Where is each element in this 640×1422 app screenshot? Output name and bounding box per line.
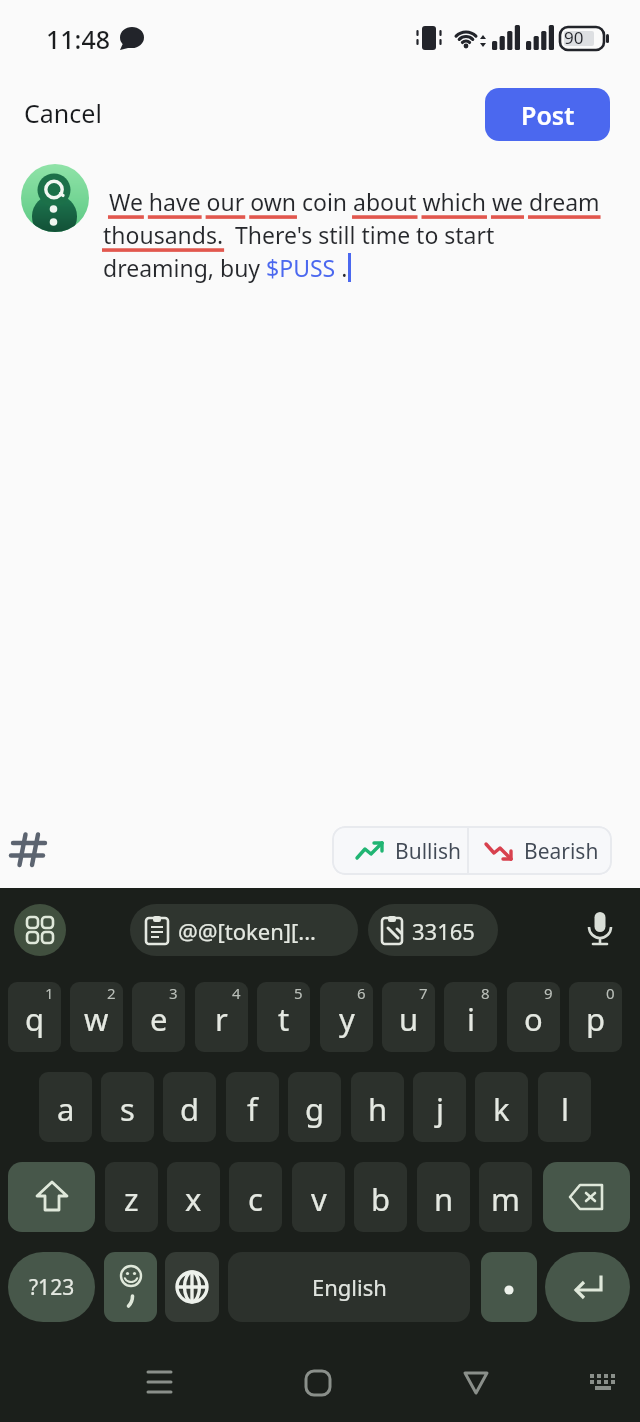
staticText: 4 — [232, 983, 241, 1003]
button[interactable]: v — [292, 1162, 345, 1232]
button[interactable]: u — [382, 982, 435, 1052]
button[interactable] — [588, 1372, 618, 1396]
button[interactable]: Bearish — [468, 826, 612, 875]
button[interactable]: m — [479, 1162, 532, 1232]
staticText: k — [493, 1088, 510, 1130]
staticText: 0 — [606, 983, 615, 1003]
button[interactable]: z — [105, 1162, 158, 1232]
button[interactable]: Post — [485, 88, 610, 141]
staticText: 33165 — [412, 916, 475, 946]
staticText: q — [25, 998, 45, 1040]
staticText: 5 — [294, 983, 303, 1003]
staticText: g — [305, 1088, 325, 1130]
staticText: 6 — [357, 983, 366, 1003]
staticText: j — [436, 1088, 444, 1130]
staticText: thousands. There's still time to start — [103, 219, 495, 250]
button[interactable]: b — [354, 1162, 407, 1232]
staticText: ?123 — [29, 1273, 75, 1302]
staticText: u — [399, 998, 419, 1040]
button[interactable]: k — [475, 1072, 528, 1142]
staticText: b — [371, 1178, 391, 1220]
staticText: t — [278, 998, 290, 1040]
staticText: a — [57, 1088, 75, 1130]
button[interactable] — [543, 1162, 630, 1232]
button[interactable]: i — [444, 982, 497, 1052]
staticText: x — [185, 1178, 202, 1220]
button[interactable] — [304, 1369, 332, 1397]
staticText: s — [120, 1088, 135, 1130]
button[interactable]: g — [288, 1072, 341, 1142]
staticText: We have our own coin about which we drea… — [103, 186, 600, 217]
staticText: 7 — [419, 983, 428, 1003]
button[interactable] — [146, 1368, 174, 1396]
button[interactable]: Bullish — [332, 826, 467, 875]
button[interactable]: ?123 — [8, 1252, 95, 1322]
staticText: r — [215, 998, 228, 1040]
button[interactable] — [10, 830, 50, 870]
button[interactable]: y — [320, 982, 373, 1052]
staticText: 1 — [45, 983, 54, 1003]
staticText: Bullish — [395, 837, 461, 866]
button[interactable]: j — [413, 1072, 466, 1142]
staticText: English — [312, 1272, 387, 1302]
staticText: Bearish — [524, 837, 599, 866]
button[interactable] — [14, 904, 66, 956]
button[interactable] — [586, 912, 614, 948]
staticText: h — [368, 1088, 388, 1130]
button[interactable]: f — [226, 1072, 279, 1142]
staticText: Post — [521, 98, 575, 132]
button[interactable]: Cancel — [24, 96, 102, 130]
button[interactable]: q — [8, 982, 61, 1052]
button[interactable]: @@[token][... — [130, 904, 358, 956]
button[interactable]: h — [351, 1072, 404, 1142]
staticText: 90 — [564, 26, 584, 49]
staticText: p — [586, 998, 606, 1040]
staticText: f — [247, 1088, 258, 1130]
button[interactable]: o — [507, 982, 560, 1052]
button[interactable]: d — [163, 1072, 216, 1142]
staticText: i — [467, 998, 475, 1040]
staticText: dreaming, buy $PUSS . — [103, 252, 348, 283]
staticText: m — [491, 1178, 520, 1220]
button[interactable] — [462, 1369, 490, 1397]
staticText: o — [524, 998, 543, 1040]
button[interactable]: a — [39, 1072, 92, 1142]
staticText: n — [434, 1178, 454, 1220]
button[interactable]: c — [229, 1162, 282, 1232]
button[interactable] — [8, 1162, 95, 1232]
staticText: d — [180, 1088, 200, 1130]
staticText: 3 — [169, 983, 178, 1003]
button[interactable] — [481, 1252, 537, 1322]
staticText: c — [248, 1178, 263, 1220]
button[interactable]: English — [228, 1252, 470, 1322]
button[interactable]: s — [101, 1072, 154, 1142]
staticText: 8 — [481, 983, 490, 1003]
button[interactable] — [165, 1252, 219, 1322]
button[interactable]: 33165 — [368, 904, 498, 956]
button[interactable]: r — [195, 982, 248, 1052]
staticText: 11:48 — [46, 22, 111, 56]
staticText: 9 — [544, 983, 553, 1003]
button[interactable]: x — [167, 1162, 220, 1232]
staticText: @@[token][... — [178, 916, 316, 946]
button[interactable]: w — [70, 982, 123, 1052]
button[interactable]: n — [417, 1162, 470, 1232]
button[interactable]: e — [132, 982, 185, 1052]
button[interactable]: p — [569, 982, 622, 1052]
staticText: z — [124, 1178, 139, 1220]
staticText: w — [84, 998, 109, 1040]
staticText: e — [150, 998, 168, 1040]
staticText: v — [311, 1178, 327, 1220]
staticText: y — [339, 998, 355, 1040]
button[interactable]: l — [538, 1072, 591, 1142]
staticText: 2 — [107, 983, 116, 1003]
button[interactable]: t — [257, 982, 310, 1052]
staticText: Cancel — [24, 96, 102, 130]
staticText: l — [561, 1088, 569, 1130]
button[interactable] — [545, 1252, 630, 1322]
button[interactable] — [104, 1252, 157, 1322]
